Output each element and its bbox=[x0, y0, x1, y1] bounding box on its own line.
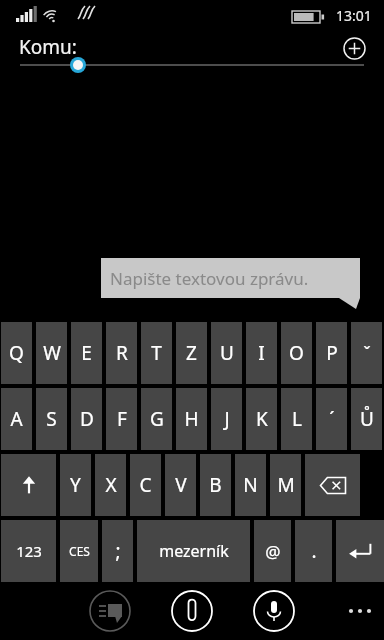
staticText: @ bbox=[265, 540, 281, 563]
staticText: L bbox=[292, 406, 302, 432]
staticText: . bbox=[311, 538, 317, 564]
button[interactable]: Y bbox=[60, 454, 91, 516]
staticText: I bbox=[258, 340, 265, 366]
button[interactable]: CES bbox=[60, 520, 98, 582]
staticText: ´ bbox=[329, 406, 335, 432]
staticText: P bbox=[326, 340, 338, 366]
staticText: J bbox=[224, 406, 230, 432]
button[interactable]: Napište textovou zprávu. bbox=[101, 258, 360, 298]
button[interactable]: @ bbox=[254, 520, 291, 582]
staticText: K bbox=[256, 406, 268, 432]
staticText: E bbox=[81, 340, 92, 366]
button[interactable]: C bbox=[130, 454, 161, 516]
staticText: ˇ bbox=[363, 341, 371, 366]
staticText: B bbox=[209, 472, 222, 498]
button[interactable]: H bbox=[176, 388, 207, 450]
staticText: G bbox=[150, 406, 164, 432]
button[interactable]: Shift bbox=[1, 454, 56, 516]
staticText: X bbox=[105, 472, 117, 498]
button[interactable]: U bbox=[211, 322, 242, 384]
button[interactable]: J bbox=[211, 388, 242, 450]
button[interactable]: Send message bbox=[88, 589, 132, 633]
button[interactable]: Ů bbox=[351, 388, 382, 450]
staticText: CES bbox=[69, 543, 90, 559]
button[interactable]: Attach bbox=[170, 589, 214, 633]
button[interactable]: Q bbox=[1, 322, 32, 384]
button[interactable]: B bbox=[200, 454, 231, 516]
staticText: T bbox=[151, 340, 162, 366]
staticText: H bbox=[184, 406, 199, 432]
button[interactable]: Caron bbox=[351, 322, 382, 384]
button[interactable]: K bbox=[246, 388, 277, 450]
button[interactable]: L bbox=[281, 388, 312, 450]
staticText: ; bbox=[115, 538, 121, 564]
staticText: mezerník bbox=[159, 540, 229, 562]
button[interactable]: P bbox=[316, 322, 347, 384]
button[interactable]: Voice input bbox=[252, 589, 296, 633]
button[interactable]: D bbox=[71, 388, 102, 450]
staticText: Komu: bbox=[19, 34, 77, 60]
button[interactable]: F bbox=[106, 388, 137, 450]
staticText: M bbox=[277, 472, 295, 498]
staticText: U bbox=[220, 340, 234, 366]
staticText: 13:01 bbox=[336, 6, 372, 25]
button[interactable]: ; bbox=[102, 520, 133, 582]
staticText: 123 bbox=[16, 541, 42, 561]
button[interactable]: More options bbox=[342, 593, 378, 629]
button[interactable]: 123 bbox=[1, 520, 56, 582]
button[interactable]: V bbox=[165, 454, 196, 516]
staticText: A bbox=[10, 406, 23, 432]
staticText: F bbox=[117, 406, 127, 432]
button[interactable]: N bbox=[235, 454, 266, 516]
staticText: O bbox=[289, 340, 304, 366]
button[interactable] bbox=[14, 54, 344, 76]
button[interactable]: X bbox=[95, 454, 126, 516]
button[interactable]: M bbox=[270, 454, 301, 516]
staticText: R bbox=[116, 340, 128, 366]
button[interactable]: W bbox=[36, 322, 67, 384]
button[interactable]: O bbox=[281, 322, 312, 384]
staticText: Y bbox=[70, 472, 81, 498]
button[interactable]: . bbox=[295, 520, 332, 582]
button[interactable]: S bbox=[36, 388, 67, 450]
button[interactable]: ´ bbox=[316, 388, 347, 450]
button[interactable]: R bbox=[106, 322, 137, 384]
button[interactable]: mezerník bbox=[137, 520, 250, 582]
staticText: C bbox=[139, 472, 152, 498]
staticText: S bbox=[46, 406, 57, 432]
staticText: Z bbox=[186, 340, 197, 366]
staticText: V bbox=[175, 472, 187, 498]
staticText: Q bbox=[9, 340, 24, 366]
button[interactable]: Enter bbox=[336, 520, 384, 582]
button[interactable]: Add recipient bbox=[338, 32, 370, 64]
button[interactable]: T bbox=[141, 322, 172, 384]
staticText: Napište textovou zprávu. bbox=[110, 267, 309, 290]
button[interactable]: Backspace bbox=[305, 454, 360, 516]
staticText: N bbox=[243, 472, 258, 498]
staticText: Ů bbox=[360, 406, 374, 432]
button[interactable]: G bbox=[141, 388, 172, 450]
staticText: D bbox=[80, 406, 94, 432]
button[interactable]: E bbox=[71, 322, 102, 384]
button[interactable]: A bbox=[1, 388, 32, 450]
button[interactable]: Z bbox=[176, 322, 207, 384]
staticText: W bbox=[43, 340, 61, 366]
button[interactable]: I bbox=[246, 322, 277, 384]
